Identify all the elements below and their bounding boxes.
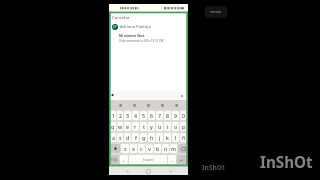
button[interactable]: e — [124, 122, 131, 131]
staticText: 7 — [158, 112, 161, 119]
button[interactable]: g — [140, 133, 147, 142]
staticText: ↵ — [180, 158, 184, 162]
button[interactable]: , — [120, 155, 128, 164]
staticText: . — [171, 156, 173, 163]
staticText: t — [143, 123, 145, 130]
button[interactable]: 2 — [117, 111, 123, 120]
staticText: 1 — [112, 112, 115, 119]
staticText: d — [126, 134, 130, 141]
button[interactable]: suggestion — [118, 103, 123, 108]
button[interactable]: Español — [129, 155, 167, 164]
staticText: x — [132, 145, 135, 152]
staticText: 4 — [134, 112, 137, 119]
staticText: o — [174, 123, 178, 130]
staticText: s — [119, 134, 122, 141]
button[interactable]: ñ — [180, 133, 187, 142]
staticText: i — [167, 123, 169, 130]
staticText: Vi de momento la 2/De 12:15 PM — [119, 39, 164, 43]
button[interactable]: b — [154, 144, 161, 153]
staticText: f — [135, 134, 137, 141]
button[interactable]: Shift — [110, 144, 120, 153]
button[interactable]: d — [124, 133, 131, 142]
button[interactable]: 4 — [132, 111, 139, 120]
button[interactable]: 9 — [172, 111, 179, 120]
button[interactable]: o — [172, 122, 179, 131]
button[interactable]: r — [132, 122, 139, 131]
staticText: InShOt — [260, 152, 313, 173]
staticText: p — [182, 123, 186, 130]
staticText: Adriana Pantoja — [120, 24, 151, 30]
staticText: y — [150, 123, 153, 130]
staticText: 5 — [142, 112, 145, 119]
button[interactable]: j — [156, 133, 163, 142]
staticText: b — [156, 145, 160, 152]
button[interactable]: t — [140, 122, 147, 131]
staticText: u — [158, 123, 162, 130]
button[interactable]: suggestion — [146, 103, 151, 108]
button[interactable]: w — [117, 122, 123, 131]
button[interactable]: h — [148, 133, 155, 142]
button[interactable]: suggestion — [160, 103, 165, 108]
staticText: z — [124, 145, 127, 152]
staticText: Español — [143, 158, 154, 162]
button[interactable]: u — [156, 122, 163, 131]
button[interactable]: suggestion — [132, 103, 137, 108]
staticText: a — [112, 134, 115, 141]
button[interactable] — [115, 91, 183, 99]
staticText: AP — [113, 25, 117, 29]
button[interactable]: 1 — [110, 111, 116, 120]
button[interactable]: n — [162, 144, 169, 153]
staticText: Cancelar — [112, 14, 130, 20]
button[interactable]: s — [117, 133, 123, 142]
staticText: l — [175, 134, 177, 141]
button[interactable]: v — [146, 144, 153, 153]
button[interactable]: Back — [124, 168, 131, 175]
staticText: , — [123, 156, 125, 163]
button[interactable]: AP — [112, 24, 188, 30]
staticText: k — [166, 134, 169, 141]
button[interactable]: Cancelar — [112, 14, 188, 20]
button[interactable]: . — [168, 155, 176, 164]
button[interactable]: p — [180, 122, 187, 131]
button[interactable]: Enter — [177, 155, 187, 164]
staticText: c — [140, 145, 143, 152]
button[interactable]: k — [164, 133, 171, 142]
button[interactable]: m — [170, 144, 177, 153]
staticText: 6 — [150, 112, 153, 119]
button[interactable]: ?123 — [110, 155, 119, 164]
button[interactable]: q — [110, 122, 116, 131]
button[interactable]: 3 — [124, 111, 131, 120]
button[interactable]: f — [132, 133, 139, 142]
staticText: 0 — [182, 112, 185, 119]
button[interactable]: 7 — [156, 111, 163, 120]
staticText: e — [126, 123, 129, 130]
staticText: Mi número libre — [119, 34, 145, 38]
staticText: h — [150, 134, 154, 141]
button[interactable]: Recents — [167, 168, 174, 175]
staticText: InShOt — [202, 163, 225, 172]
staticText: 9 — [174, 112, 177, 119]
staticText: j — [159, 134, 161, 141]
button[interactable]: 8 — [164, 111, 171, 120]
button[interactable]: i — [164, 122, 171, 131]
button[interactable]: l — [172, 133, 179, 142]
button[interactable]: z — [121, 144, 129, 153]
button[interactable]: y — [148, 122, 155, 131]
button[interactable]: 0 — [180, 111, 187, 120]
staticText: 2 — [119, 112, 122, 119]
staticText: g — [142, 134, 146, 141]
staticText: ñ — [182, 134, 186, 141]
button[interactable]: a — [110, 133, 116, 142]
button[interactable]: Home — [145, 168, 152, 175]
button[interactable]: Backspace — [178, 144, 187, 153]
button[interactable]: c — [138, 144, 145, 153]
button[interactable]: 5 — [140, 111, 147, 120]
button[interactable]: suggestion — [174, 103, 179, 108]
button[interactable]: Notification — [205, 6, 227, 18]
button[interactable]: 6 — [148, 111, 155, 120]
staticText: n — [164, 145, 168, 152]
staticText: r — [134, 123, 137, 130]
staticText: m — [171, 145, 176, 152]
button[interactable]: x — [130, 144, 137, 153]
staticText: v — [148, 145, 151, 152]
